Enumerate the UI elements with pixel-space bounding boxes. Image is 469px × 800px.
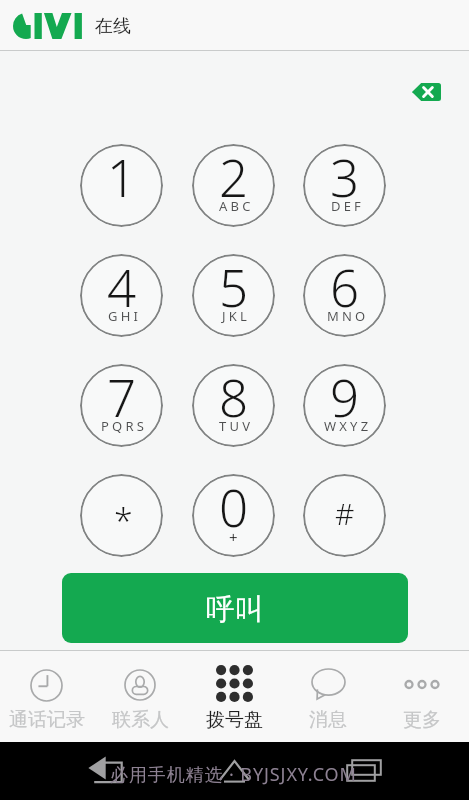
staticText: 9 (330, 364, 360, 431)
button[interactable]: Recents (346, 759, 383, 782)
staticText: 7 (107, 364, 137, 431)
button[interactable]: 6 (303, 254, 386, 337)
button[interactable]: 1 (80, 144, 163, 227)
staticText: DEF (331, 197, 365, 215)
staticText: 4 (107, 254, 137, 321)
button[interactable]: * (80, 474, 163, 557)
staticText: # (335, 493, 355, 534)
staticText: 通话记录 (9, 708, 85, 732)
button[interactable]: 0 (192, 474, 275, 557)
button[interactable]: 2 (192, 144, 275, 227)
button[interactable]: 消息 (281, 650, 375, 742)
staticText: 2 (219, 144, 249, 211)
staticText: 6 (330, 254, 360, 321)
staticText: TUV (219, 417, 254, 435)
button[interactable]: 7 (80, 364, 163, 447)
staticText: 3 (330, 144, 360, 211)
staticText: PQRS (101, 417, 148, 435)
staticText: 必用手机精选 · BYJSJXY.COM (110, 762, 357, 787)
staticText: MNO (327, 307, 369, 325)
button[interactable]: 更多 (375, 650, 469, 742)
staticText: 0 (219, 474, 249, 541)
staticText: 8 (219, 364, 249, 431)
button[interactable]: Back (83, 756, 125, 784)
button[interactable]: 4 (80, 254, 163, 337)
button[interactable]: Home (216, 758, 253, 784)
staticText: JKL (222, 307, 251, 325)
staticText: 1 (107, 144, 137, 211)
button[interactable]: 3 (303, 144, 386, 227)
staticText: 消息 (309, 708, 347, 732)
staticText: 呼叫 (206, 591, 264, 628)
staticText: GHI (108, 307, 142, 325)
button[interactable]: 联系人 (93, 650, 187, 742)
staticText: 联系人 (112, 708, 169, 732)
staticText: ABC (219, 197, 254, 215)
button[interactable]: 8 (192, 364, 275, 447)
staticText: 5 (219, 254, 249, 321)
button[interactable]: 拨号盘 (187, 650, 281, 742)
button[interactable]: 9 (303, 364, 386, 447)
staticText: WXYZ (324, 417, 372, 435)
staticText: 更多 (403, 708, 441, 732)
staticText: 在线 (95, 15, 131, 38)
button[interactable]: 通话记录 (0, 650, 93, 742)
staticText: 拨号盘 (206, 708, 263, 732)
button[interactable]: 5 (192, 254, 275, 337)
button[interactable]: # (303, 474, 386, 557)
button[interactable]: 呼叫 (62, 573, 408, 643)
staticText: * (114, 498, 133, 544)
button[interactable]: Backspace (401, 73, 451, 111)
staticText: + (229, 527, 238, 547)
